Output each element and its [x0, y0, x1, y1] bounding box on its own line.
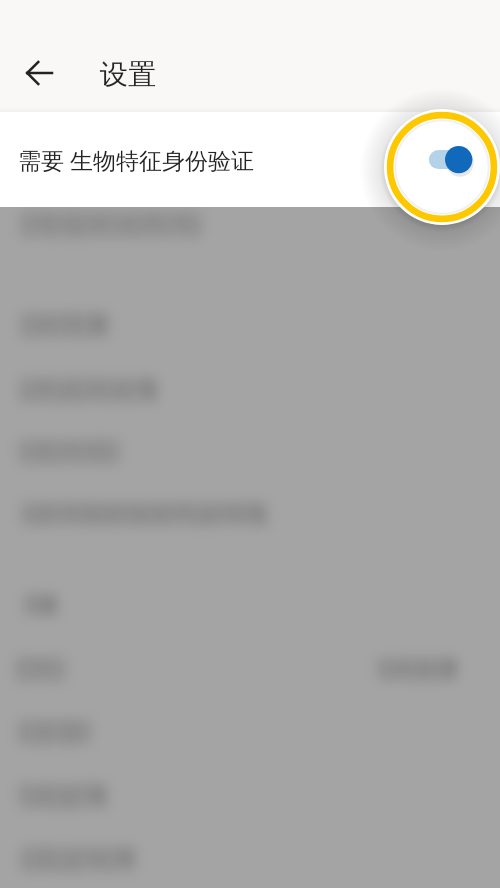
- staticText: 需要 生物特征身份验证: [18, 144, 254, 175]
- button[interactable]: Require biometric authentication, on: [360, 85, 500, 249]
- staticText: 设置: [100, 57, 156, 92]
- button[interactable]: 需要 生物特征身份验证: [0, 112, 500, 207]
- button[interactable]: Back: [15, 49, 63, 97]
